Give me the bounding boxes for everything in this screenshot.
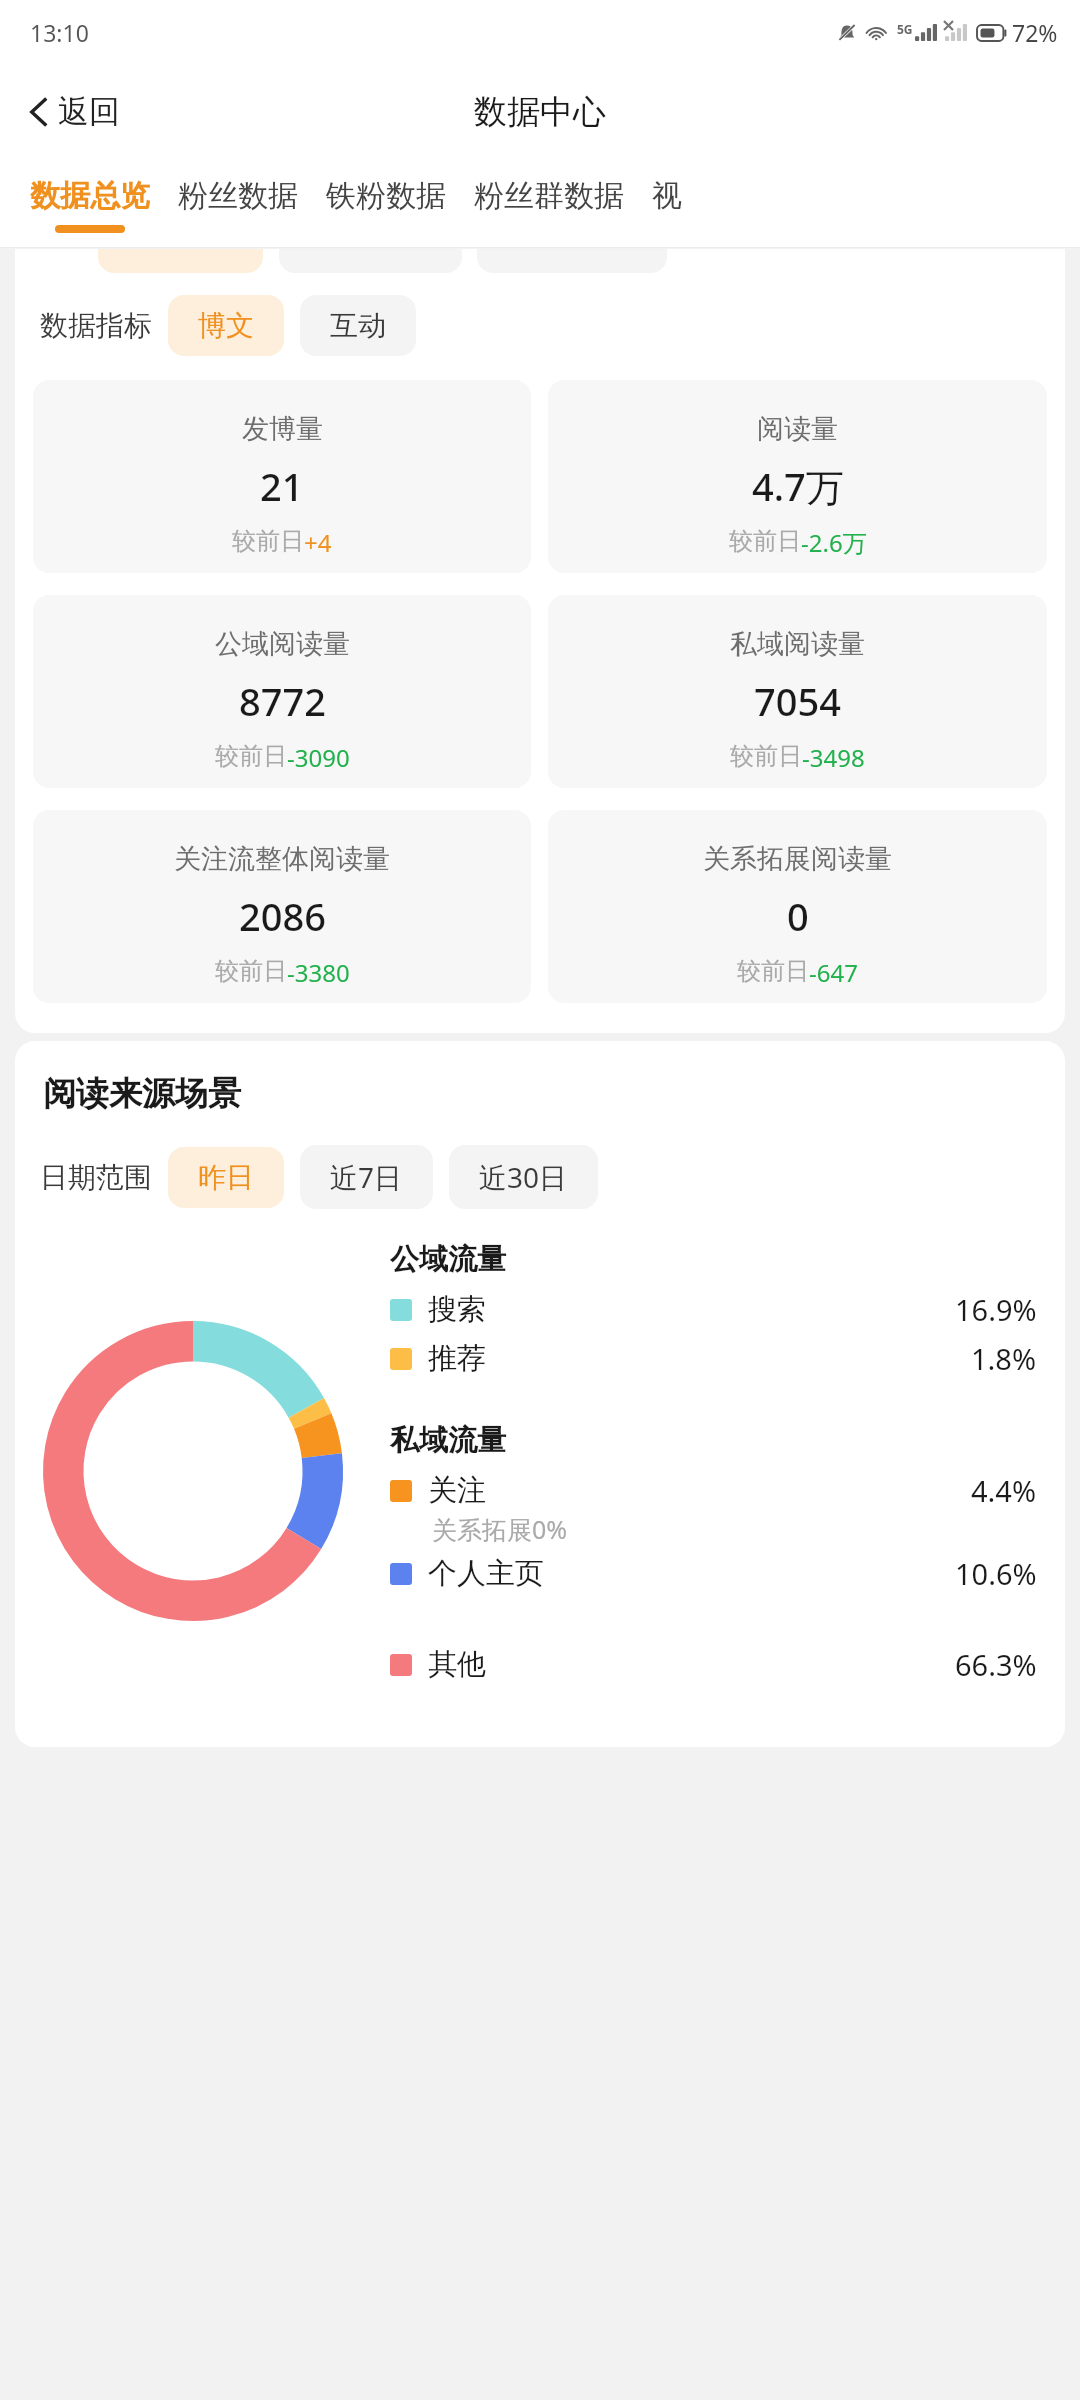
staticText: 数据中心 <box>474 91 606 133</box>
staticText: 0 <box>787 890 809 942</box>
staticText: 私域阅读量 <box>730 627 865 661</box>
staticText: 较前日 <box>730 741 802 771</box>
staticText: 近7日 <box>330 1158 403 1196</box>
staticText: 日期范围 <box>40 1160 152 1195</box>
staticText: -3498 <box>802 741 865 774</box>
button[interactable]: 数据总览 <box>30 158 150 233</box>
staticText: 近30日 <box>479 1158 568 1196</box>
staticText: 互动 <box>330 308 386 343</box>
staticText: 阅读量 <box>757 412 838 446</box>
staticText: 较前日 <box>729 526 801 556</box>
staticText: 视 <box>652 177 682 215</box>
staticText: 关系拓展阅读量 <box>703 842 892 876</box>
staticText: 5G <box>897 21 913 37</box>
staticText: 较前日 <box>215 741 287 771</box>
staticText: 昨日 <box>198 1160 254 1195</box>
staticText: 搜索 <box>428 1291 486 1328</box>
button[interactable]: 其他 <box>390 1645 1037 1684</box>
button[interactable]: 昨日 <box>168 1147 284 1208</box>
staticText: 阅读来源场景 <box>43 1073 241 1115</box>
staticText: 个人主页 <box>428 1555 544 1592</box>
button[interactable]: 关注流整体阅读量 <box>33 810 531 1003</box>
staticText: 私域流量 <box>390 1422 506 1459</box>
staticText: 返回 <box>58 92 120 131</box>
button[interactable]: 个人主页 <box>390 1554 1037 1593</box>
staticText: 其他 <box>428 1646 486 1683</box>
staticText: -647 <box>809 956 858 989</box>
staticText: -2.6万 <box>801 526 867 559</box>
staticText: 关系拓展0% <box>432 1512 568 1546</box>
staticText: 66.3% <box>955 1645 1037 1684</box>
staticText: 2086 <box>239 890 326 942</box>
button[interactable]: 返回 <box>18 86 128 137</box>
staticText: 博文 <box>198 308 254 343</box>
staticText: 较前日 <box>737 956 809 986</box>
staticText: 公域流量 <box>390 1241 506 1278</box>
staticText: 4.4% <box>971 1471 1037 1510</box>
button[interactable]: 近7日 <box>300 1145 433 1209</box>
staticText: 7054 <box>754 675 841 727</box>
staticText: 1.8% <box>971 1339 1037 1378</box>
staticText: 粉丝数据 <box>178 177 298 215</box>
button[interactable]: 推荐 <box>390 1339 1037 1378</box>
button[interactable] <box>98 249 263 273</box>
button[interactable]: 关系拓展阅读量 <box>548 810 1047 1003</box>
staticText: 21 <box>260 460 304 512</box>
staticText: 较前日 <box>215 956 287 986</box>
staticText: -3090 <box>287 741 350 774</box>
staticText: 推荐 <box>428 1340 486 1377</box>
button[interactable]: 发博量 <box>33 380 531 573</box>
button[interactable]: 互动 <box>300 295 416 356</box>
staticText: 公域阅读量 <box>215 627 350 661</box>
button[interactable]: 粉丝群数据 <box>474 158 624 225</box>
staticText: 8772 <box>239 675 326 727</box>
staticText: 数据总览 <box>30 177 150 215</box>
button[interactable]: 博文 <box>168 295 284 356</box>
button[interactable]: 阅读量 <box>548 380 1047 573</box>
staticText: 关注流整体阅读量 <box>174 842 390 876</box>
button[interactable]: 视 <box>652 158 682 225</box>
button[interactable]: 私域阅读量 <box>548 595 1047 788</box>
staticText: 72% <box>1012 17 1058 48</box>
staticText: 关注 <box>428 1472 486 1509</box>
staticText: 发博量 <box>242 412 323 446</box>
button[interactable]: 近30日 <box>449 1145 598 1209</box>
staticText: 10.6% <box>955 1554 1037 1593</box>
staticText: 4.7万 <box>752 460 844 512</box>
staticText: -3380 <box>287 956 350 989</box>
button[interactable]: 粉丝数据 <box>178 158 298 225</box>
staticText: 数据指标 <box>40 308 152 343</box>
staticText: 较前日 <box>232 526 304 556</box>
staticText: +4 <box>304 526 332 559</box>
button[interactable]: 关注 <box>390 1471 1037 1510</box>
staticText: 粉丝群数据 <box>474 177 624 215</box>
staticText: 铁粉数据 <box>326 177 446 215</box>
staticText: 16.9% <box>955 1290 1037 1329</box>
button[interactable]: 搜索 <box>390 1290 1037 1329</box>
button[interactable]: 铁粉数据 <box>326 158 446 225</box>
staticText: 13:10 <box>30 17 89 48</box>
button[interactable]: 公域阅读量 <box>33 595 531 788</box>
